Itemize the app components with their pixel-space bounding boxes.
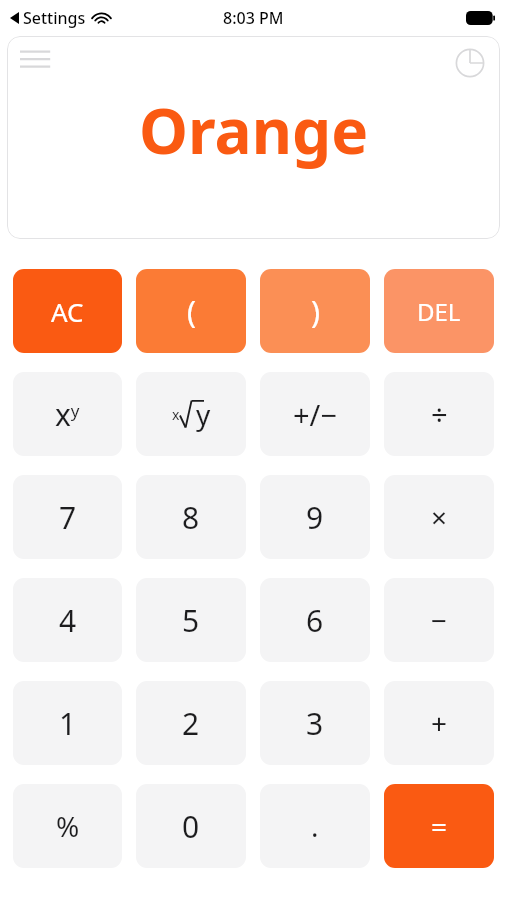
staticText: ÷ [431,395,448,434]
staticText: y [196,395,211,433]
staticText: DEL [417,295,461,328]
staticText: 4 [59,600,77,641]
staticText: 6 [306,600,324,641]
staticText: 9 [306,497,324,538]
staticText: AC [51,294,84,329]
button[interactable]: History [453,46,487,80]
staticText: 8:03 PM [223,7,284,29]
staticText: % [56,807,80,845]
button[interactable]: ( [136,269,246,353]
staticText: − [431,601,448,639]
button[interactable]: 3 [260,681,370,765]
button[interactable]: − [384,578,494,662]
staticText: xy [55,394,80,435]
staticText: Settings [23,7,86,29]
staticText: Orange [139,88,369,172]
button[interactable]: + [384,681,494,765]
button[interactable]: 0 [136,784,246,868]
staticText: x [172,405,180,424]
staticText: × [431,498,448,536]
staticText: 2 [182,703,200,744]
button[interactable]: 9 [260,475,370,559]
button[interactable]: 1 [13,681,122,765]
button[interactable]: 6 [260,578,370,662]
staticText: 5 [182,600,200,641]
button[interactable]: DEL [384,269,494,353]
staticText: + [431,704,448,742]
button[interactable]: % [13,784,122,868]
button[interactable]: x root of y [136,372,246,456]
button[interactable]: AC [13,269,122,353]
button[interactable]: Menu [19,45,59,75]
staticText: 3 [306,703,324,744]
button[interactable]: x to the power y [13,372,122,456]
staticText: = [431,807,448,845]
button[interactable]: 2 [136,681,246,765]
button[interactable]: 8 [136,475,246,559]
button[interactable]: × [384,475,494,559]
button[interactable]: +/− [260,372,370,456]
staticText: ( [187,291,196,332]
staticText: . [311,807,319,845]
staticText: 0 [182,806,200,847]
button[interactable]: = [384,784,494,868]
staticText: +/− [293,395,337,434]
staticText: 1 [59,703,77,744]
button[interactable]: ) [260,269,370,353]
button[interactable]: ÷ [384,372,494,456]
button[interactable]: 4 [13,578,122,662]
button[interactable]: 5 [136,578,246,662]
staticText: 7 [59,497,77,538]
button[interactable]: . [260,784,370,868]
staticText: ) [311,291,320,332]
staticText: 8 [182,497,200,538]
button[interactable]: 7 [13,475,122,559]
